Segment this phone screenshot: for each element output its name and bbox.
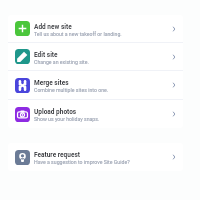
button[interactable]: Feature request	[8, 143, 183, 171]
staticText: Combine multiple sites into one.	[34, 87, 109, 93]
staticText: Merge sites	[34, 79, 69, 87]
staticText: Change an existing site.	[34, 59, 89, 65]
button[interactable]: Upload photos	[8, 100, 183, 128]
other: Feature request	[170, 153, 178, 161]
staticText: Tell us about a new takeoff or landing.	[34, 31, 122, 37]
staticText: Add new site	[34, 23, 72, 31]
other: Merge sites	[170, 81, 178, 89]
other: Add new site	[170, 25, 178, 33]
staticText: Upload photos	[34, 108, 77, 116]
staticText: Edit site	[34, 51, 58, 59]
staticText: Have a suggestion to improve Site Guide?	[34, 159, 130, 165]
button[interactable]: Add new site	[8, 15, 183, 42]
button[interactable]: Merge sites	[8, 71, 183, 99]
staticText: Show us your holiday snaps.	[34, 116, 100, 122]
other: Upload photos	[170, 110, 178, 118]
other: Edit site	[170, 53, 178, 61]
button[interactable]: Edit site	[8, 43, 183, 70]
staticText: Feature request	[34, 151, 80, 159]
